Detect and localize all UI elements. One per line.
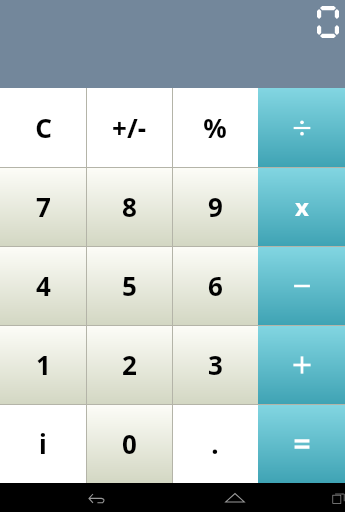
button[interactable]: Recent apps xyxy=(332,483,345,512)
button[interactable]: Back xyxy=(62,483,132,512)
staticText: 1 xyxy=(36,347,51,382)
button[interactable]: 2 xyxy=(86,325,172,404)
staticText: 0 xyxy=(122,426,137,461)
button[interactable]: Equals xyxy=(258,404,345,483)
button[interactable]: 6 xyxy=(172,246,258,325)
button[interactable]: 7 xyxy=(0,167,86,246)
button[interactable]: 5 xyxy=(86,246,172,325)
staticText: . xyxy=(211,426,219,461)
staticText: 6 xyxy=(208,268,223,303)
staticText: 3 xyxy=(208,347,223,382)
staticText: i xyxy=(39,426,47,461)
staticText: 4 xyxy=(36,268,51,303)
button[interactable]: 3 xyxy=(172,325,258,404)
staticText: x xyxy=(295,190,309,223)
button[interactable]: Minus xyxy=(258,246,345,325)
button[interactable]: 1 xyxy=(0,325,86,404)
button[interactable]: 9 xyxy=(172,167,258,246)
button[interactable]: 8 xyxy=(86,167,172,246)
button[interactable]: i xyxy=(0,404,86,483)
staticText: 5 xyxy=(122,268,137,303)
staticText: 7 xyxy=(36,189,51,224)
button[interactable]: Plus xyxy=(258,325,345,404)
button[interactable]: Divide xyxy=(258,88,345,167)
button[interactable]: 0 xyxy=(86,404,172,483)
staticText: C xyxy=(35,110,52,145)
button[interactable]: +/- xyxy=(86,88,172,167)
staticText: 9 xyxy=(208,189,223,224)
staticText: 2 xyxy=(122,347,137,382)
staticText: 8 xyxy=(122,189,137,224)
button[interactable]: C xyxy=(0,88,86,167)
staticText: % xyxy=(203,110,227,145)
button[interactable]: 4 xyxy=(0,246,86,325)
button[interactable] xyxy=(0,0,345,88)
button[interactable]: . xyxy=(172,404,258,483)
button[interactable]: Multiply xyxy=(258,167,345,246)
button[interactable]: % xyxy=(172,88,258,167)
button[interactable]: Home xyxy=(200,483,270,512)
staticText: +/- xyxy=(112,110,146,145)
